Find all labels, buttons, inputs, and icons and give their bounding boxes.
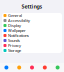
button[interactable]: Tab 1 (0, 63, 13, 72)
button[interactable]: Notifications (2, 33, 62, 38)
button[interactable]: Tab 3 (26, 63, 38, 72)
staticText: Privacy (8, 43, 21, 48)
staticText: General (8, 13, 22, 18)
staticText: Accessibility (8, 18, 30, 23)
button[interactable]: Privacy (2, 43, 62, 48)
button[interactable]: Tab 2 (13, 63, 26, 72)
staticText: Storage (8, 48, 21, 53)
button[interactable]: Tab 4 (38, 63, 51, 72)
button[interactable]: Accessibility (2, 18, 62, 23)
button[interactable]: Sounds (2, 38, 62, 43)
button[interactable]: Tab 5 (51, 63, 64, 72)
button[interactable]: Display (2, 23, 62, 28)
staticText: Sounds (8, 38, 20, 43)
staticText: Notifications (8, 33, 29, 38)
staticText: Wallpaper (8, 28, 26, 33)
button[interactable]: General (2, 13, 62, 18)
staticText: Settings (21, 3, 42, 10)
button[interactable]: Wallpaper (2, 28, 62, 33)
staticText: Display (8, 23, 21, 28)
button[interactable]: Storage (2, 48, 62, 53)
